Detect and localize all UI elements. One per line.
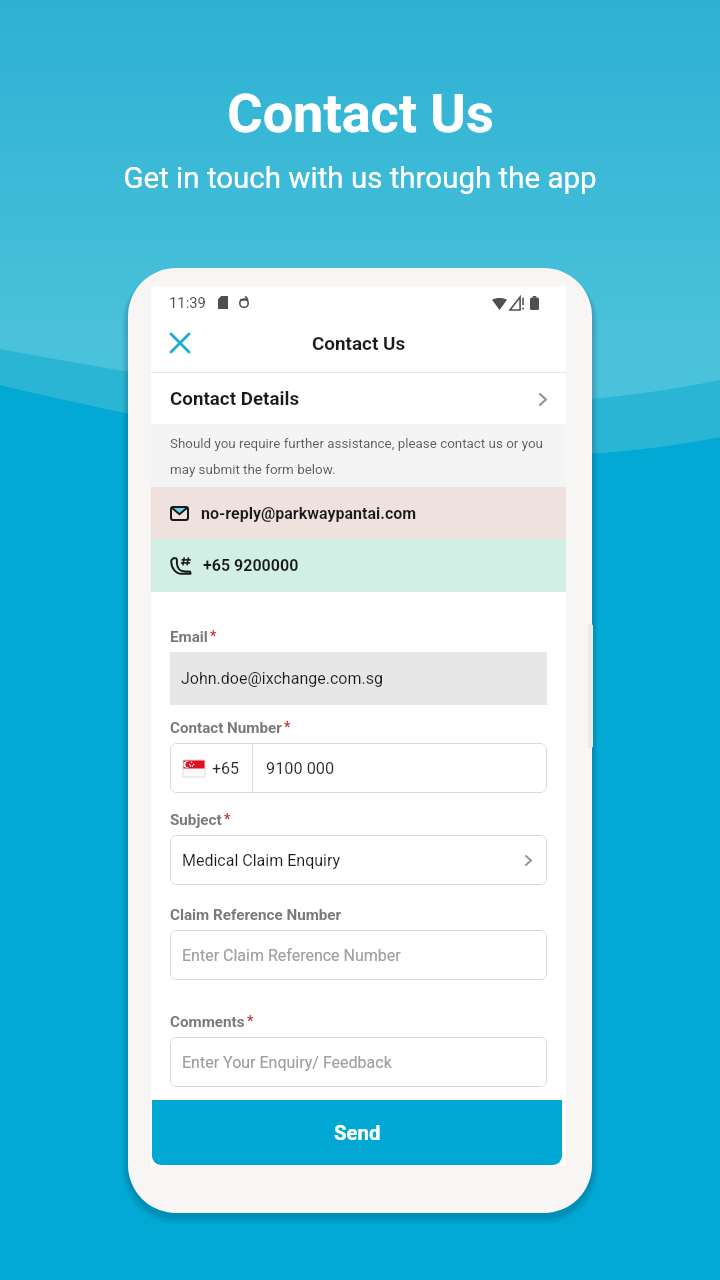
staticText: Enter Claim Reference Number [182, 946, 401, 965]
button[interactable]: John.doe@ixchange.com.sg [170, 652, 547, 705]
staticText: * [224, 811, 231, 827]
staticText: Claim Reference Number [170, 906, 342, 924]
staticText: John.doe@ixchange.com.sg [181, 669, 383, 688]
staticText: * [284, 719, 291, 735]
other: Choose subject [519, 849, 537, 871]
button[interactable]: +65 9200000 [151, 539, 566, 592]
staticText: +65 9200000 [203, 556, 299, 575]
button[interactable]: +65 [170, 743, 547, 793]
button[interactable]: Send [152, 1100, 562, 1165]
staticText: Contact Us [312, 332, 406, 354]
staticText: * [247, 1013, 254, 1029]
staticText: Contact Us [227, 82, 494, 145]
button[interactable]: Enter Your Enquiry/ Feedback [170, 1037, 547, 1087]
button[interactable]: Enter Claim Reference Number [170, 930, 547, 980]
button[interactable]: no-reply@parkwaypantai.com [151, 487, 566, 539]
button[interactable]: Contact Details [151, 373, 566, 424]
staticText: Contact Number [170, 719, 282, 737]
staticText: +65 [212, 759, 240, 778]
button[interactable]: Medical Claim Enquiry [170, 835, 547, 885]
button[interactable]: Close [158, 321, 202, 365]
staticText: Contact Details [170, 388, 525, 410]
staticText: 11:39 [169, 294, 206, 311]
staticText: Subject [170, 811, 222, 829]
staticText: Get in touch with us through the app [123, 161, 597, 196]
staticText: Email [170, 628, 208, 646]
staticText: no-reply@parkwaypantai.com [201, 504, 417, 523]
other: Open contact details [525, 386, 547, 412]
staticText: Enter Your Enquiry/ Feedback [182, 1053, 392, 1072]
staticText: Send [334, 1121, 381, 1145]
staticText: * [210, 628, 217, 644]
staticText: Medical Claim Enquiry [182, 851, 519, 870]
staticText: Should you require further assistance, p… [170, 436, 558, 477]
staticText: 9100 000 [266, 759, 335, 778]
staticText: Comments [170, 1013, 245, 1031]
